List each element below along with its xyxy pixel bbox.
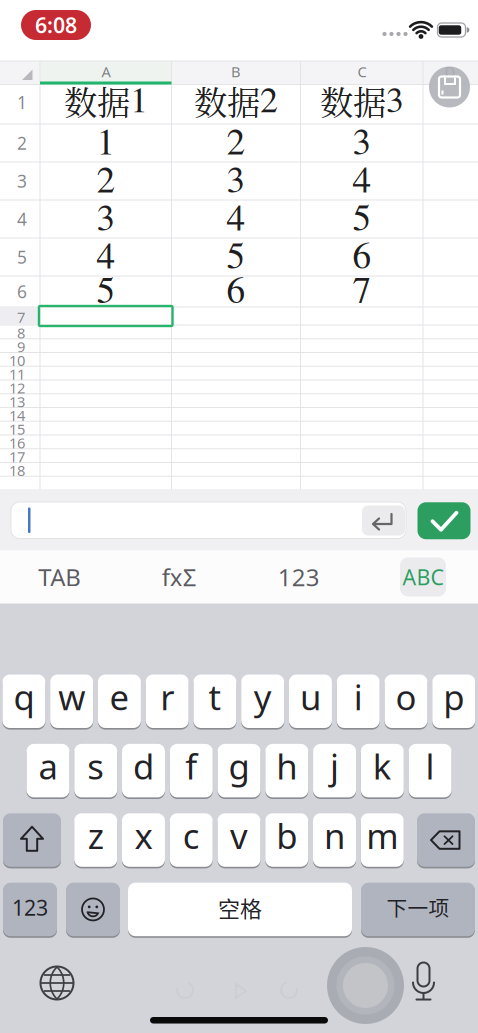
staticText: 7 (17, 307, 25, 327)
button[interactable]: a (26, 743, 69, 798)
staticText: 空格 (218, 891, 262, 923)
staticText: 123 (12, 893, 48, 922)
button[interactable]: Emoji (66, 882, 120, 937)
button[interactable]: x (122, 812, 165, 868)
button[interactable]: c (170, 812, 213, 868)
button[interactable]: w (50, 673, 93, 729)
staticText: j (330, 743, 339, 789)
button[interactable]: u (289, 673, 332, 729)
button[interactable]: n (313, 812, 356, 868)
button[interactable]: y (241, 673, 284, 729)
staticText: 1 (96, 115, 115, 165)
staticText: r (160, 674, 174, 720)
button[interactable]: r (146, 673, 189, 729)
button[interactable]: Shift (3, 812, 61, 868)
staticText: fxΣ (162, 561, 197, 593)
button[interactable]: z (74, 812, 117, 868)
button[interactable]: Insert line break (362, 505, 405, 535)
staticText: 123 (278, 561, 320, 593)
staticText: 6 (352, 229, 371, 279)
staticText: a (38, 743, 57, 789)
button[interactable]: l (409, 743, 452, 798)
staticText: c (183, 812, 200, 858)
staticText: 15 (9, 419, 25, 439)
staticText: 4 (226, 191, 245, 241)
button[interactable]: 空格 (128, 882, 352, 937)
button[interactable]: e (98, 673, 141, 729)
staticText: 12 (9, 378, 25, 398)
staticText: 6 (17, 280, 27, 303)
staticText: e (109, 674, 129, 720)
staticText: v (230, 812, 248, 858)
staticText: 18 (9, 461, 25, 480)
button[interactable]: p (432, 673, 475, 729)
staticText: 17 (9, 447, 25, 466)
button[interactable]: Cell text entry (11, 502, 406, 538)
button[interactable]: d (122, 743, 165, 798)
staticText: q (13, 674, 34, 720)
staticText: k (373, 743, 392, 789)
staticText: n (324, 812, 345, 858)
button[interactable]: f (170, 743, 213, 798)
staticText: 14 (9, 406, 25, 425)
staticText: t (208, 674, 221, 720)
staticText: B (231, 62, 241, 81)
button[interactable]: 下一项 (361, 882, 475, 937)
staticText: 5 (352, 191, 371, 241)
button[interactable]: o (384, 673, 427, 729)
staticText: 2 (17, 131, 27, 154)
staticText: s (87, 743, 104, 789)
staticText: 7 (352, 264, 371, 313)
button[interactable]: fxΣ (139, 555, 219, 599)
staticText: ABC (402, 563, 443, 591)
staticText: i (354, 674, 363, 720)
staticText: 5 (226, 229, 245, 279)
staticText: b (276, 812, 297, 858)
button[interactable]: AssistiveTouch (327, 947, 404, 1024)
staticText: 4 (352, 153, 371, 203)
staticText: 8 (17, 323, 25, 343)
staticText: 6:08 (35, 11, 77, 39)
button[interactable]: s (74, 743, 117, 798)
button[interactable]: i (337, 673, 380, 729)
staticText: 2 (96, 153, 115, 203)
staticText: 数据3 (320, 75, 404, 124)
staticText: f (185, 743, 197, 789)
button[interactable]: Dictation (401, 961, 445, 1005)
button[interactable]: q (2, 673, 45, 729)
staticText: o (395, 674, 416, 720)
staticText: w (58, 674, 85, 720)
staticText: y (254, 674, 272, 720)
staticText: TAB (38, 561, 81, 593)
button[interactable]: Save (429, 66, 470, 107)
button[interactable]: t (193, 673, 236, 729)
staticText: u (300, 674, 321, 720)
button[interactable]: TAB (20, 555, 100, 599)
staticText: 5 (96, 264, 115, 313)
staticText: p (443, 674, 464, 720)
staticText: 4 (17, 207, 27, 230)
button[interactable]: j (313, 743, 356, 798)
button[interactable]: ABC (393, 555, 453, 599)
button[interactable]: Delete (417, 812, 475, 868)
button[interactable]: m (361, 812, 404, 868)
button[interactable]: 123 (259, 555, 339, 599)
staticText: 11 (9, 364, 25, 384)
button[interactable]: g (217, 743, 260, 798)
staticText: 数据2 (194, 75, 278, 124)
button[interactable]: b (265, 812, 308, 868)
staticText: D (444, 62, 455, 81)
button[interactable]: Numbers (3, 882, 57, 937)
staticText: 数据1 (64, 75, 148, 124)
staticText: 9 (17, 337, 25, 356)
staticText: 13 (9, 392, 25, 411)
button[interactable]: h (265, 743, 308, 798)
button[interactable]: Confirm (417, 502, 470, 539)
button[interactable]: Next keyboard (35, 961, 79, 1005)
staticText: d (133, 743, 154, 789)
staticText: 3 (352, 115, 371, 165)
button[interactable]: k (361, 743, 404, 798)
staticText: 5 (17, 245, 27, 268)
button[interactable]: Recording indicator 6:08 (21, 10, 91, 40)
button[interactable]: v (217, 812, 260, 868)
